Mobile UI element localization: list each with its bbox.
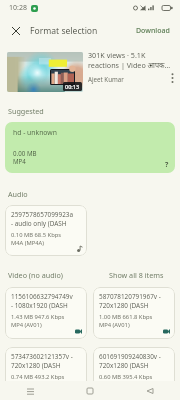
button[interactable]: More options xyxy=(166,72,178,84)
button[interactable]: Home xyxy=(60,381,120,400)
staticText: 10:28 xyxy=(9,3,27,13)
staticText: MP4 xyxy=(13,157,26,165)
button[interactable]: Close xyxy=(8,23,24,39)
staticText: 1.00 MB 661.8 Kbps xyxy=(99,313,153,321)
staticText: 720x1280 (DASH xyxy=(11,361,61,370)
staticText: 601691909240830v - xyxy=(99,352,161,361)
staticText: 1156106632794749v xyxy=(11,292,73,301)
staticText: 0.00 MB xyxy=(13,149,37,157)
staticText: Audio xyxy=(8,189,28,199)
staticText: Show all 8 items xyxy=(109,270,164,280)
button[interactable]: 601691909240830v - xyxy=(93,347,175,399)
staticText: Video (no audio) xyxy=(8,270,63,280)
staticText: 0.10 MB 68.5 Kbps xyxy=(11,231,62,239)
staticText: Ajeet Kumar xyxy=(88,75,124,83)
staticText: 2597578657099923a xyxy=(11,210,74,219)
staticText: 00:13 xyxy=(65,83,80,90)
staticText: MP4 (AV01) xyxy=(99,321,130,329)
button[interactable]: Video thumbnail xyxy=(7,52,83,92)
button[interactable]: 1156106632794749v xyxy=(5,287,87,339)
staticText: 720x1280 (DASH xyxy=(99,361,149,370)
staticText: 1.43 MB 947.6 Kbps xyxy=(11,313,65,321)
staticText: hd - unknown xyxy=(13,128,57,137)
staticText: Suggested xyxy=(8,106,44,116)
staticText: 0.74 MB 493.2 Kbps xyxy=(11,373,65,381)
staticText: 720x1280 (DASH xyxy=(99,301,149,310)
button[interactable]: 2597578657099923a xyxy=(5,205,87,256)
staticText: - 1080x1920 (DASH xyxy=(11,301,68,310)
staticText: Format selection xyxy=(30,25,98,37)
staticText: - audio only (DASH xyxy=(11,219,67,228)
staticText: 301K views · 5.1K xyxy=(88,50,146,60)
button[interactable]: 573473602121357v - xyxy=(5,347,87,399)
staticText: MP4 (AV01) xyxy=(11,381,42,389)
button[interactable]: Show all 8 items xyxy=(109,270,164,280)
button[interactable]: Download xyxy=(133,22,173,40)
staticText: 573473602121357v - xyxy=(11,352,73,361)
button[interactable]: Recents xyxy=(0,381,60,400)
staticText: M4A (MP4A) xyxy=(11,239,45,247)
button[interactable]: Back xyxy=(120,381,180,400)
button[interactable]: hd - unknown xyxy=(5,122,175,173)
staticText: 0.60 MB 395.4 Kbps xyxy=(99,373,153,381)
button[interactable]: 587078120791967v - xyxy=(93,287,175,339)
staticText: MP4 (AV01) xyxy=(11,321,42,329)
staticText: 587078120791967v - xyxy=(99,292,161,301)
staticText: ? xyxy=(165,160,169,170)
staticText: Download xyxy=(136,26,170,36)
staticText: reactions | Video आपकी ... xyxy=(88,60,172,70)
